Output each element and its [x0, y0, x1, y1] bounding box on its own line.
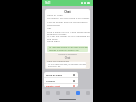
staticText: Chat [45, 56, 90, 59]
button[interactable]: App 4 [83, 89, 93, 97]
staticText: spoken a sister on sisters 3 up [49, 49, 79, 52]
button[interactable]: App 2 [63, 89, 73, 97]
staticText: Hurts or Tried [47, 13, 63, 16]
staticText: At I am the helper so is in message on [47, 34, 90, 37]
staticText: Good night [47, 39, 60, 42]
staticText: and this I do [48, 65, 61, 68]
staticText: problems sunday [47, 32, 67, 35]
staticText: and write [47, 37, 58, 40]
staticText: Hi I worked ouabe so let them 2000 walks… [49, 46, 88, 49]
staticText: Archive [46, 79, 55, 82]
button[interactable]: Mark as Read [44, 72, 78, 77]
staticText: At it is light blocked, all spoken you b… [48, 63, 86, 66]
button[interactable]: App 0 [42, 89, 53, 97]
staticText: I sat an helper and the confirmation [47, 20, 88, 23]
button[interactable]: Delete Chat [44, 84, 78, 87]
staticText: Mark as Read [46, 73, 63, 76]
staticText: Wednesday [47, 23, 60, 26]
staticText: Sure it works so it is 14pm spoke write [47, 30, 90, 33]
staticText: Chat [45, 10, 90, 14]
button[interactable]: App 1 [53, 89, 63, 97]
staticText: Locked or delivered [45, 53, 90, 56]
button[interactable]: Archive [44, 78, 78, 83]
staticText: Here are pamphlets [47, 59, 70, 62]
staticText: Hey [47, 26, 52, 29]
staticText: We spoke I am told there is an urgent ur… [47, 16, 90, 19]
staticText: 9:41 [45, 1, 51, 5]
staticText: Delete Chat [46, 84, 60, 87]
button[interactable]: App 3 [73, 89, 83, 97]
